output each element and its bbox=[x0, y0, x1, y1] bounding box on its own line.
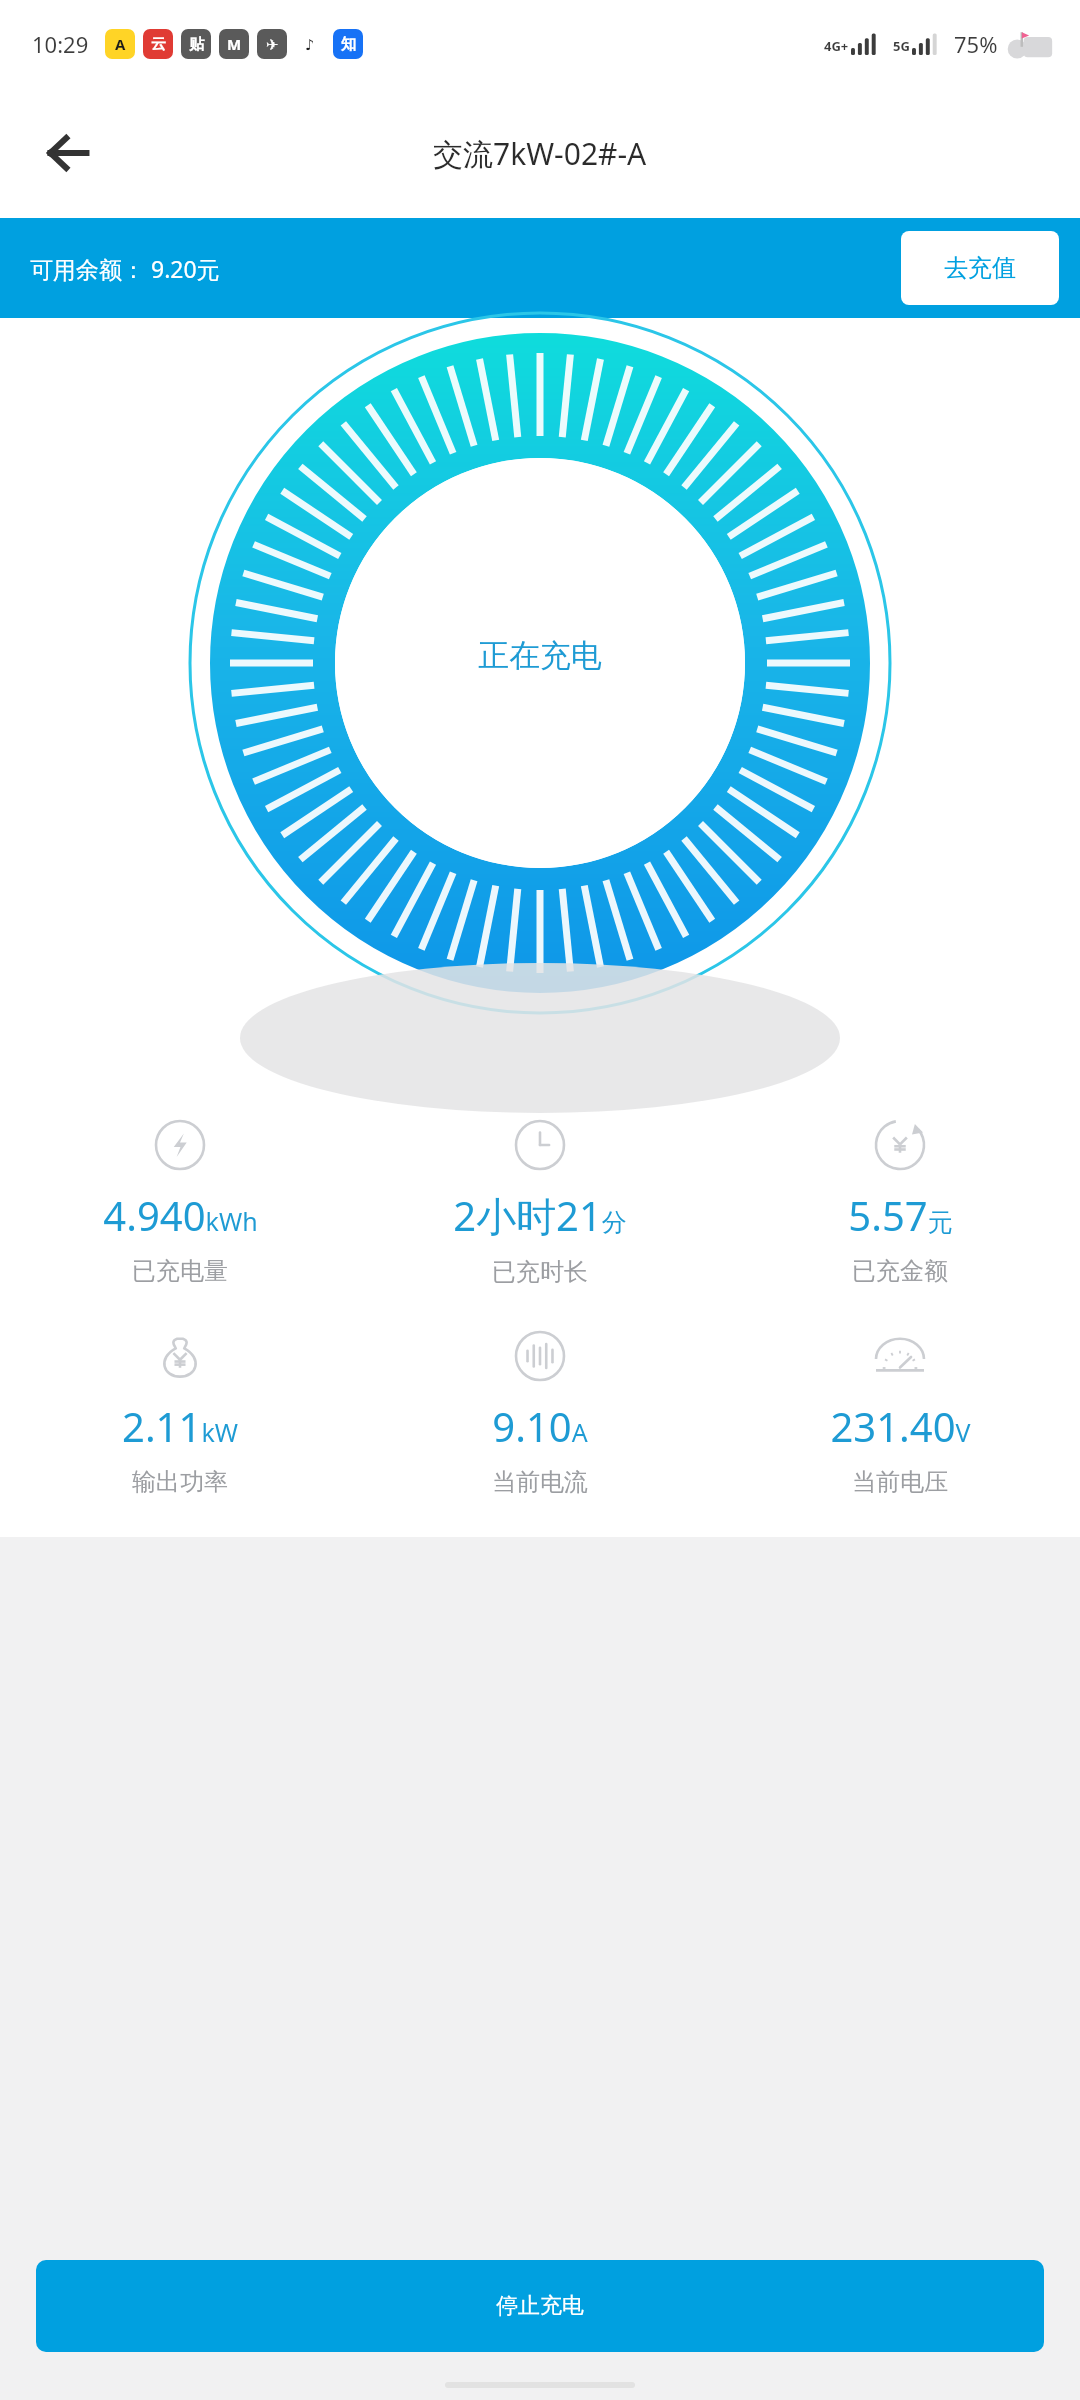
other: clock bbox=[513, 1118, 567, 1172]
staticText: 去充值 bbox=[944, 253, 1016, 283]
staticText: 知 bbox=[341, 35, 356, 54]
staticText: 231.40V bbox=[830, 1399, 971, 1453]
button[interactable]: refund bbox=[720, 1118, 1080, 1286]
staticText: 停止充电 bbox=[496, 2292, 584, 2320]
staticText: 5G bbox=[893, 37, 910, 55]
staticText: A bbox=[115, 34, 126, 54]
staticText: 已充电量 bbox=[132, 1256, 228, 1286]
staticText: ♪ bbox=[305, 36, 315, 53]
staticText: 10:29 bbox=[32, 29, 89, 59]
other: refund bbox=[873, 1118, 927, 1172]
staticText: 4G+ bbox=[824, 37, 849, 55]
staticText: 5.57元 bbox=[848, 1188, 953, 1242]
staticText: 2小时21分 bbox=[453, 1188, 627, 1243]
staticText: 4.940kWh bbox=[103, 1188, 258, 1242]
staticText: 贴 bbox=[189, 35, 204, 54]
staticText: 交流7kW-02#-A bbox=[433, 133, 647, 174]
button[interactable]: Back bbox=[20, 105, 116, 201]
staticText: 当前电流 bbox=[492, 1467, 588, 1497]
staticText: 正在充电 bbox=[478, 636, 602, 675]
staticText: ✈ bbox=[266, 36, 279, 53]
staticText: 可用余额： 9.20元 bbox=[30, 253, 220, 284]
staticText: 当前电压 bbox=[852, 1467, 948, 1497]
button[interactable]: meter bbox=[720, 1329, 1080, 1497]
staticText: 已充时长 bbox=[492, 1257, 588, 1287]
staticText: 云 bbox=[151, 35, 166, 54]
staticText: 2.11kW bbox=[122, 1399, 238, 1453]
button[interactable]: bag bbox=[0, 1329, 360, 1497]
staticText: M bbox=[227, 34, 242, 54]
button[interactable]: 去充值 bbox=[901, 231, 1059, 305]
staticText: 9.10A bbox=[492, 1399, 588, 1453]
other: bag bbox=[153, 1329, 207, 1383]
button[interactable]: bolt bbox=[0, 1118, 360, 1286]
staticText: 输出功率 bbox=[132, 1467, 228, 1497]
button[interactable]: wave bbox=[360, 1329, 720, 1497]
staticText: 75% bbox=[954, 29, 998, 59]
other: meter bbox=[873, 1329, 927, 1383]
other: wave bbox=[513, 1329, 567, 1383]
button[interactable]: clock bbox=[360, 1118, 720, 1287]
button[interactable]: 停止充电 bbox=[36, 2260, 1044, 2352]
other: bolt bbox=[153, 1118, 207, 1172]
staticText: 已充金额 bbox=[852, 1256, 948, 1286]
